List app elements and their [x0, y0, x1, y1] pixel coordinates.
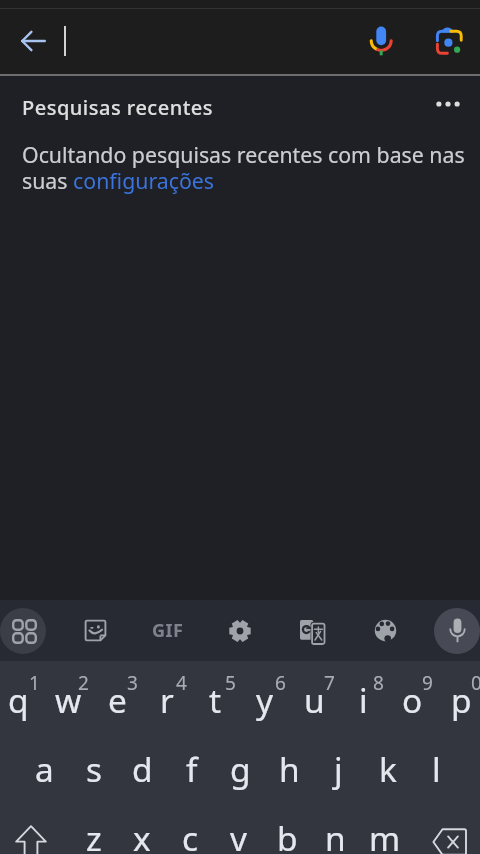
staticText: w — [55, 677, 82, 722]
button[interactable]: z — [69, 810, 118, 854]
button[interactable]: d — [118, 734, 167, 803]
button[interactable]: p — [437, 665, 480, 734]
button[interactable]: h — [265, 734, 314, 803]
staticText: d — [132, 746, 153, 791]
button[interactable]: s — [69, 734, 118, 803]
button[interactable]: q — [0, 665, 43, 734]
staticText: c — [182, 815, 199, 854]
button[interactable]: n — [311, 810, 360, 854]
staticText: v — [230, 815, 247, 854]
staticText: e — [108, 677, 127, 722]
button[interactable]: Backspace — [418, 802, 480, 854]
staticText: f — [186, 746, 198, 791]
button[interactable]: More options — [424, 80, 472, 128]
button[interactable]: i — [339, 665, 388, 734]
button[interactable]: m — [360, 810, 409, 854]
staticText: i — [359, 677, 368, 722]
staticText: o — [402, 677, 423, 722]
staticText: b — [277, 815, 298, 854]
button[interactable]: u — [290, 665, 339, 734]
staticText: Ocultando pesquisas recentes com base na… — [22, 140, 474, 195]
button[interactable]: w — [44, 665, 93, 734]
staticText: m — [369, 815, 401, 854]
button[interactable]: k — [363, 734, 412, 803]
staticText: q — [8, 677, 29, 722]
staticText: 8 — [373, 670, 384, 694]
staticText: 3 — [127, 670, 138, 694]
button[interactable]: a — [20, 734, 69, 803]
staticText: x — [133, 815, 151, 854]
button[interactable]: c — [166, 810, 215, 854]
staticText: Pesquisas recentes — [22, 94, 214, 121]
staticText: 0 — [471, 670, 480, 694]
staticText: 5 — [225, 670, 236, 694]
button[interactable]: r — [142, 665, 191, 734]
staticText: 9 — [422, 670, 433, 694]
button[interactable]: Back — [7, 15, 59, 67]
staticText: k — [379, 746, 397, 791]
staticText: y — [256, 677, 274, 722]
button[interactable]: b — [263, 810, 312, 854]
staticText: 4 — [176, 670, 187, 694]
button[interactable]: o — [388, 665, 437, 734]
staticText: j — [334, 746, 343, 791]
button[interactable]: y — [240, 665, 289, 734]
button[interactable]: Search by voice — [356, 15, 408, 67]
staticText: u — [304, 677, 325, 722]
button[interactable]: f — [167, 734, 216, 803]
staticText: t — [209, 677, 222, 722]
button[interactable]: Symbols keyboard — [0, 600, 59, 661]
button[interactable]: l — [412, 734, 461, 803]
staticText: r — [160, 677, 174, 722]
button[interactable]: Translate — [278, 600, 346, 661]
staticText: z — [86, 815, 102, 854]
staticText: 2 — [78, 670, 89, 694]
button[interactable]: Search with Google Lens — [422, 15, 474, 67]
button[interactable]: Theme — [351, 600, 419, 661]
button[interactable]: GIF — [134, 600, 202, 661]
staticText: l — [432, 746, 441, 791]
staticText: g — [230, 746, 251, 791]
staticText: n — [325, 815, 346, 854]
button[interactable]: Shift — [0, 802, 62, 854]
staticText: h — [279, 746, 300, 791]
staticText: s — [86, 746, 102, 791]
button[interactable]: t — [191, 665, 240, 734]
button[interactable]: x — [117, 810, 166, 854]
button[interactable]: Voice input — [421, 600, 480, 661]
button[interactable]: Stickers — [61, 600, 129, 661]
staticText: 6 — [275, 670, 286, 694]
staticText: a — [35, 746, 54, 791]
button[interactable]: v — [214, 810, 263, 854]
staticText: 1 — [29, 670, 40, 694]
button[interactable]: Pesquisas recentes — [10, 87, 214, 127]
button[interactable]: e — [93, 665, 142, 734]
staticText: p — [451, 677, 472, 722]
button[interactable]: j — [314, 734, 363, 803]
staticText: GIF — [152, 618, 184, 643]
button[interactable]: g — [216, 734, 265, 803]
button[interactable]: Settings — [206, 600, 274, 661]
staticText: 7 — [324, 670, 335, 694]
